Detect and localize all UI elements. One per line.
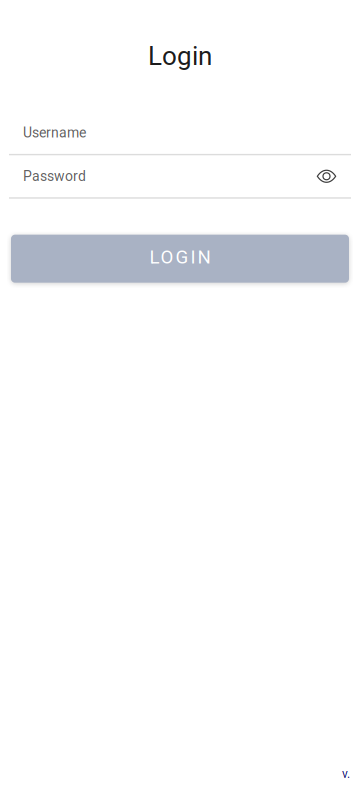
button[interactable]: LOGIN [11, 235, 349, 283]
staticText: Username [23, 124, 86, 141]
staticText: v. [342, 767, 350, 781]
staticText: Login [148, 41, 212, 71]
staticText: Password [23, 168, 86, 184]
button[interactable]: Show password [309, 163, 343, 189]
staticText: LOGIN [149, 246, 210, 268]
